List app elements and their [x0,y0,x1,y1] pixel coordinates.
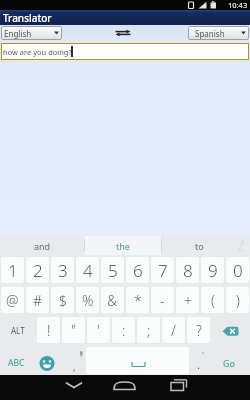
staticText: ABC [8,357,25,369]
button[interactable]: 5 [101,257,124,283]
button[interactable]: ? [187,317,210,343]
button[interactable]: and [10,236,74,255]
staticText: 6 [133,259,143,282]
button[interactable]: * [126,287,149,313]
button[interactable]: 9 [201,257,224,283]
button[interactable]: + [176,287,199,313]
button[interactable] [86,347,189,374]
button[interactable]: ALT [0,315,36,345]
staticText: to [195,240,204,252]
button[interactable]: how are you doing? [1,43,249,60]
button[interactable]: Go [208,345,250,375]
staticText: 2 [33,259,43,282]
staticText: how are you doing? [3,47,72,57]
staticText: * [134,291,142,310]
staticText: 9 [208,259,218,282]
button[interactable]: 7 [151,257,174,283]
button[interactable]: ; [137,317,160,343]
button[interactable] [110,27,136,39]
button[interactable]: % [76,287,99,313]
staticText: & [107,291,118,310]
button[interactable]: 0 [226,257,249,283]
button[interactable]: - [151,287,174,313]
staticText: 10:43 [228,0,248,10]
staticText: 0 [233,259,243,282]
button[interactable]: ! [37,317,60,343]
staticText: ? [196,321,202,340]
staticText: - [160,291,165,310]
button[interactable]: 8 [176,257,199,283]
staticText: # [33,291,43,310]
staticText: " [71,321,77,340]
button[interactable]: $ [51,287,74,313]
button[interactable]: Spanish [188,26,249,40]
staticText: $ [59,291,67,310]
staticText: ( [211,291,215,310]
button[interactable]: 2 [26,257,49,283]
staticText: English [4,28,32,39]
staticText: 4 [83,259,93,282]
button[interactable]: : [112,317,135,343]
staticText: Translator [3,11,52,25]
staticText: Spanish [195,28,225,39]
staticText: ; [147,321,151,340]
button[interactable]: 1 [1,257,24,283]
button[interactable]: , [61,345,86,375]
staticText: 5 [108,259,118,282]
button[interactable]: English [1,26,62,40]
button[interactable] [158,375,198,400]
staticText: % [82,291,94,310]
staticText: 8 [183,259,193,282]
button[interactable] [105,375,145,400]
staticText: 3 [58,259,68,282]
staticText: 7 [158,259,168,282]
staticText: the [116,240,130,252]
staticText: @ [6,291,19,310]
button[interactable]: ' [87,317,110,343]
button[interactable]: ) [226,287,249,313]
button[interactable]: & [101,287,124,313]
button[interactable]: to [167,236,231,255]
button[interactable]: 4 [76,257,99,283]
staticText: ! [47,321,51,340]
staticText: + [184,291,192,310]
button[interactable] [33,345,61,375]
staticText: 1 [8,259,18,282]
staticText: ) [236,291,240,310]
staticText: , [73,360,76,374]
staticText: ' [97,321,100,340]
button[interactable]: the [90,236,155,255]
staticText: : [122,321,126,340]
button[interactable]: ( [201,287,224,313]
button[interactable]: " [62,317,85,343]
button[interactable]: 6 [126,257,149,283]
button[interactable]: . [189,345,208,375]
staticText: Go [223,357,235,369]
staticText: ALT [11,325,25,336]
staticText: . [197,357,200,372]
button[interactable] [55,375,95,400]
button[interactable]: 3 [51,257,74,283]
button[interactable]: @ [1,287,24,313]
button[interactable]: # [26,287,49,313]
staticText: and [34,240,51,252]
button[interactable]: / [162,317,185,343]
staticText: / [171,321,176,340]
button[interactable]: ABC [0,345,33,375]
button[interactable] [211,315,250,345]
